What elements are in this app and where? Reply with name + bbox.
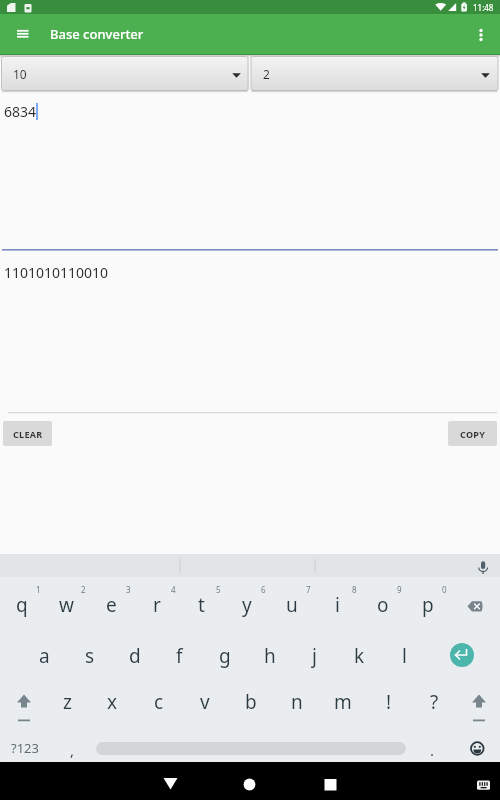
button[interactable]	[310, 766, 350, 796]
button[interactable]: ,	[57, 735, 87, 765]
button[interactable]: x	[90, 680, 135, 724]
staticText: l	[402, 643, 407, 669]
button[interactable]: v	[182, 680, 227, 724]
button[interactable]: p	[405, 583, 450, 627]
button[interactable]	[150, 766, 190, 796]
staticText: w	[59, 592, 74, 618]
button[interactable]	[450, 643, 474, 667]
staticText: q	[16, 592, 28, 618]
staticText: 0	[442, 584, 447, 595]
button[interactable]: 10	[2, 57, 249, 91]
button[interactable]: r	[134, 583, 179, 627]
staticText: Base converter	[50, 25, 144, 43]
button[interactable]: .	[417, 735, 447, 765]
button[interactable]: q	[0, 583, 44, 627]
staticText: ?	[430, 689, 439, 715]
staticText: 4	[171, 584, 176, 595]
staticText: v	[200, 689, 210, 715]
staticText: 5	[216, 584, 221, 595]
staticText: 11:48	[473, 2, 494, 13]
staticText: CLEAR	[13, 428, 43, 440]
staticText: z	[63, 689, 72, 715]
button[interactable]: l	[382, 634, 427, 678]
button[interactable]: !	[366, 680, 411, 724]
button[interactable]: o	[360, 583, 405, 627]
staticText: g	[219, 643, 231, 669]
staticText: d	[129, 643, 141, 669]
staticText: 2	[81, 584, 86, 595]
button[interactable]	[230, 766, 270, 796]
staticText: m	[334, 689, 352, 715]
button[interactable]: a	[22, 634, 67, 678]
staticText: t	[198, 592, 205, 618]
staticText: e	[106, 592, 117, 618]
button[interactable]: n	[274, 680, 319, 724]
button[interactable]: CLEAR	[3, 421, 52, 446]
staticText: o	[377, 592, 389, 618]
button[interactable]: g	[202, 634, 247, 678]
staticText: ,	[70, 740, 75, 760]
staticText: 1101010110010	[4, 263, 109, 282]
button[interactable]: COPY	[448, 421, 497, 446]
staticText: 8	[352, 584, 357, 595]
staticText: k	[354, 643, 365, 669]
staticText: r	[153, 592, 161, 618]
button[interactable]: w	[44, 583, 89, 627]
staticText: 2	[263, 66, 270, 82]
button[interactable]: b	[228, 680, 273, 724]
staticText: 10	[13, 66, 27, 82]
button[interactable]: ?	[412, 680, 457, 724]
staticText: 3	[126, 584, 131, 595]
staticText: b	[245, 689, 257, 715]
button[interactable]: s	[67, 634, 112, 678]
staticText: j	[312, 643, 317, 669]
button[interactable]: j	[292, 634, 337, 678]
staticText: 1	[36, 584, 41, 595]
staticText: f	[176, 643, 183, 669]
button[interactable]	[468, 20, 496, 48]
button[interactable]: e	[89, 583, 134, 627]
staticText: h	[264, 643, 276, 669]
staticText: n	[291, 689, 303, 715]
staticText: x	[107, 689, 118, 715]
staticText: COPY	[460, 428, 486, 440]
staticText: c	[154, 689, 164, 715]
staticText: i	[335, 592, 340, 618]
staticText: 9	[397, 584, 402, 595]
staticText: p	[422, 592, 434, 618]
button[interactable]: h	[247, 634, 292, 678]
button[interactable]: u	[269, 583, 314, 627]
staticText: 6834	[4, 102, 37, 121]
button[interactable]: 2	[251, 57, 498, 91]
staticText: ?123	[11, 739, 39, 757]
button[interactable]	[8, 20, 36, 48]
button[interactable]: c	[136, 680, 181, 724]
button[interactable]: k	[337, 634, 382, 678]
button[interactable]: m	[320, 680, 365, 724]
button[interactable]: i	[315, 583, 360, 627]
button[interactable]: d	[112, 634, 157, 678]
staticText: !	[386, 689, 392, 715]
staticText: a	[39, 643, 50, 669]
staticText: 7	[306, 584, 311, 595]
button[interactable]: f	[157, 634, 202, 678]
button[interactable]: z	[45, 680, 90, 724]
button[interactable]: t	[179, 583, 224, 627]
staticText: s	[85, 643, 95, 669]
staticText: u	[286, 592, 298, 618]
staticText: 6	[261, 584, 266, 595]
button[interactable]: y	[224, 583, 269, 627]
staticText: .	[430, 740, 435, 760]
staticText: y	[242, 592, 252, 618]
